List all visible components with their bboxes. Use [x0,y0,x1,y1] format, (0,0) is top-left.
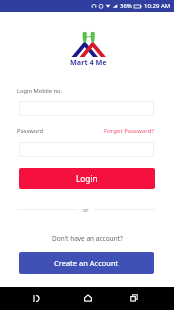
button[interactable] [19,101,154,116]
staticText: 10:29 AM [144,2,171,10]
button[interactable]: Login [19,168,155,189]
staticText: Mart 4 Me [70,57,107,67]
staticText: Don't have an account? [52,234,123,243]
button[interactable] [19,142,154,157]
staticText: 36% [120,2,132,10]
button[interactable]: Home [78,288,98,308]
button[interactable]: Forgot Password? [104,127,154,135]
staticText: Password [17,127,44,135]
button[interactable]: Recent apps [124,288,144,308]
button[interactable]: Create an Account [19,252,154,274]
button[interactable]: Back [26,288,46,308]
staticText: Login Mobile no. [17,87,63,95]
staticText: Create an Account [54,258,119,268]
staticText: or [83,206,89,213]
staticText: Forgot Password? [104,127,154,135]
staticText: Login [76,173,98,184]
